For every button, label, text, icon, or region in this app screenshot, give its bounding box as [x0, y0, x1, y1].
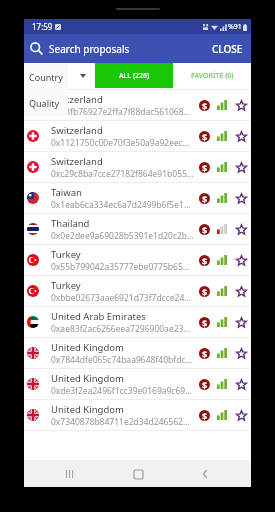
- staticText: 0x55b799042a35777ebe0775b6546...: [51, 261, 194, 273]
- staticText: $: [202, 379, 208, 390]
- staticText: 17:59: [32, 21, 53, 32]
- button[interactable]: Price: [195, 214, 213, 244]
- button[interactable]: Price: [195, 183, 213, 213]
- button[interactable]: Price: [195, 369, 213, 399]
- staticText: $: [202, 410, 208, 421]
- staticText: Switzerland: [51, 124, 103, 137]
- button[interactable]: Price: [195, 121, 213, 151]
- button[interactable]: Favorite: [231, 214, 251, 244]
- staticText: Thailand: [51, 217, 90, 230]
- staticText: 0xbbe02673aae6921d73f7dcce24ce...: [51, 292, 194, 304]
- staticText: 0x0e2dee9a69028b5391e1d20c2b6...: [51, 230, 194, 242]
- button[interactable]: Back: [183, 461, 227, 487]
- button[interactable]: Favorite: [231, 183, 251, 213]
- staticText: Quality: [29, 97, 60, 109]
- button[interactable]: United Arab Emirates: [24, 307, 251, 338]
- button[interactable]: Quality: [213, 369, 231, 399]
- button[interactable]: Favorite: [231, 369, 251, 399]
- staticText: Search proposals: [49, 42, 130, 56]
- button[interactable]: Favorite: [231, 400, 251, 430]
- button[interactable]: Turkey: [24, 245, 251, 276]
- staticText: $: [202, 224, 208, 235]
- staticText: Switzerland: [51, 93, 103, 106]
- staticText: $: [202, 317, 208, 328]
- button[interactable]: Quality: [213, 307, 231, 337]
- staticText: $: [202, 255, 208, 266]
- button[interactable]: Favorite: [231, 307, 251, 337]
- button[interactable]: Sweden: [24, 88, 251, 90]
- button[interactable]: United Kingdom: [24, 338, 251, 369]
- button[interactable]: Favorite: [231, 245, 251, 275]
- button[interactable]: Price: [195, 245, 213, 275]
- button[interactable]: Switzerland: [24, 152, 251, 183]
- button[interactable]: Favorite: [231, 338, 251, 368]
- button[interactable]: Quality: [24, 90, 68, 116]
- staticText: 0x7340878b84711e2d34d24656209...: [51, 416, 194, 428]
- staticText: 0xae83f2ac6266eea7296900ae23a...: [51, 323, 194, 335]
- button[interactable]: Quality: [213, 214, 231, 244]
- staticText: $: [202, 193, 208, 204]
- button[interactable]: Quality: [213, 121, 231, 151]
- staticText: 0x93fb76927e2ffa7f88dac561068e...: [51, 106, 194, 118]
- button[interactable]: Quality: [213, 276, 231, 306]
- staticText: United Kingdom: [51, 403, 124, 416]
- button[interactable]: Favorite: [231, 90, 251, 120]
- button[interactable]: Price: [195, 276, 213, 306]
- button[interactable]: ALL (226): [95, 63, 173, 88]
- staticText: CLOSE: [212, 42, 243, 56]
- staticText: 0x1121750c00e70f3e50a9a92eeca5...: [51, 137, 194, 149]
- staticText: ALL (226): [119, 71, 150, 81]
- staticText: United Kingdom: [51, 372, 124, 385]
- button[interactable]: Favorite: [231, 276, 251, 306]
- button[interactable]: Country: [24, 63, 95, 88]
- button[interactable]: Price: [195, 307, 213, 337]
- button[interactable]: FAVORİTE (0): [173, 63, 251, 88]
- button[interactable]: Thailand: [24, 214, 251, 245]
- staticText: FAVORİTE (0): [191, 71, 234, 81]
- staticText: Country: [29, 70, 63, 82]
- button[interactable]: Taiwan: [24, 183, 251, 214]
- button[interactable]: Price: [195, 400, 213, 430]
- button[interactable]: Turkey: [24, 276, 251, 307]
- button[interactable]: Switzerland: [24, 90, 251, 121]
- button[interactable]: Switzerland: [24, 121, 251, 152]
- button[interactable]: Favorite: [231, 121, 251, 151]
- button[interactable]: Quality: [213, 183, 231, 213]
- staticText: $: [202, 162, 208, 173]
- button[interactable]: United Kingdom: [24, 369, 251, 400]
- button[interactable]: Price: [195, 338, 213, 368]
- button[interactable]: Quality: [213, 245, 231, 275]
- button[interactable]: Price: [195, 90, 213, 120]
- button[interactable]: Quality: [213, 90, 231, 120]
- button[interactable]: Price: [195, 152, 213, 182]
- staticText: Turkey: [51, 248, 81, 261]
- staticText: $: [202, 286, 208, 297]
- button[interactable]: United Kingdom: [24, 400, 251, 431]
- button[interactable]: Quality: [213, 152, 231, 182]
- staticText: 0x7844dfe065c74baa9648f40bfdc5...: [51, 354, 194, 366]
- button[interactable]: Favorite: [231, 152, 251, 182]
- staticText: $: [202, 348, 208, 359]
- staticText: Country: [29, 71, 63, 83]
- button[interactable]: Quality: [213, 338, 231, 368]
- button[interactable]: CLOSE: [204, 34, 251, 63]
- staticText: 0xde3f2ea2496f1cc39e0169a9c69ff...: [51, 385, 194, 397]
- staticText: %91: [228, 22, 242, 32]
- staticText: 0xc29c8ba7cce27182f864e91b055...: [51, 168, 194, 180]
- staticText: Switzerland: [51, 155, 103, 168]
- button[interactable]: Home: [116, 461, 160, 487]
- staticText: Taiwan: [51, 186, 82, 199]
- button[interactable]: Quality: [213, 400, 231, 430]
- staticText: United Arab Emirates: [51, 310, 146, 323]
- staticText: 0x1eab6ca334ec6a7d2499b6f5e1c3...: [51, 199, 194, 211]
- staticText: $: [202, 131, 208, 142]
- staticText: $: [202, 100, 208, 111]
- staticText: United Kingdom: [51, 341, 124, 354]
- button[interactable]: Recents: [48, 461, 92, 487]
- staticText: Turkey: [51, 279, 81, 292]
- button[interactable]: Country: [24, 64, 68, 90]
